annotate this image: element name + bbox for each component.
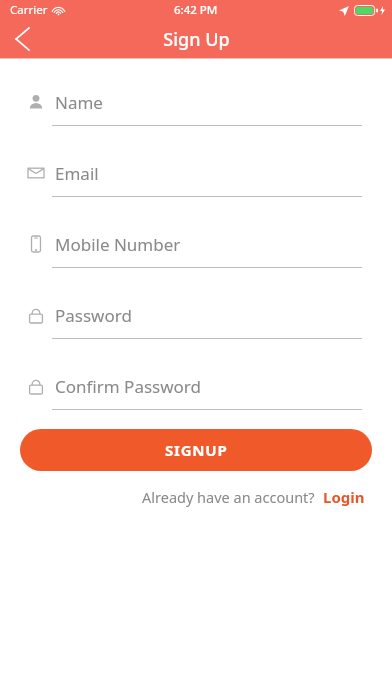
staticText: Confirm Password — [55, 375, 201, 398]
staticText: Email — [55, 162, 99, 185]
button[interactable]: Email — [0, 159, 392, 199]
button[interactable]: Back — [0, 20, 44, 58]
staticText: Mobile Number — [55, 233, 181, 256]
button[interactable]: Confirm Password — [0, 372, 392, 412]
staticText: 6:42 PM — [174, 2, 218, 18]
staticText: Already have an account? — [142, 487, 315, 507]
staticText: Name — [55, 91, 103, 114]
staticText: Login — [323, 487, 365, 507]
button[interactable]: Name — [0, 88, 392, 128]
staticText: Sign Up — [163, 27, 230, 52]
staticText: Carrier — [10, 2, 48, 18]
staticText: Password — [55, 304, 132, 327]
button[interactable]: Mobile Number — [0, 230, 392, 270]
button[interactable]: SIGNUP — [20, 429, 372, 471]
staticText: SIGNUP — [165, 440, 228, 460]
button[interactable]: Password — [0, 301, 392, 341]
button[interactable]: Login — [323, 487, 365, 507]
